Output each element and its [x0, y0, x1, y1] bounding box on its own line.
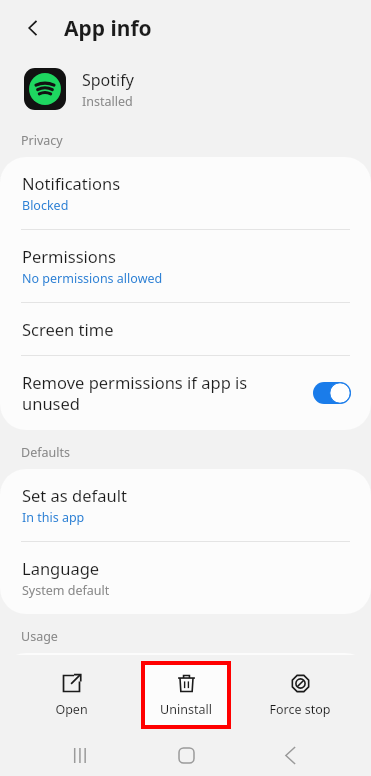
staticText: In this app: [22, 509, 85, 526]
button[interactable]: Open: [28, 663, 114, 727]
button[interactable]: Notifications: [0, 157, 371, 229]
button[interactable]: Home: [162, 735, 210, 776]
staticText: System default: [22, 582, 110, 599]
staticText: Force stop: [269, 701, 331, 718]
staticText: No permissions allowed: [22, 270, 163, 287]
staticText: Defaults: [21, 444, 70, 461]
staticText: Notifications: [22, 172, 121, 194]
button[interactable]: Uninstall: [143, 663, 229, 727]
button[interactable]: Set as default: [0, 469, 371, 541]
staticText: Remove permissions if app is unused: [22, 371, 303, 415]
staticText: Uninstall: [160, 701, 212, 718]
button[interactable]: Back: [18, 13, 48, 43]
staticText: Installed: [82, 93, 133, 110]
staticText: App info: [64, 14, 152, 43]
staticText: Permissions: [22, 245, 116, 267]
button[interactable]: Remove permissions if app is unused: [0, 356, 371, 430]
staticText: Usage: [21, 628, 58, 645]
button[interactable]: Force stop: [257, 663, 343, 727]
button[interactable]: Recent apps: [57, 735, 105, 776]
staticText: Set as default: [22, 484, 127, 506]
button[interactable]: Permissions: [0, 230, 371, 302]
staticText: Spotify: [82, 69, 134, 91]
staticText: Privacy: [21, 132, 63, 149]
staticText: Language: [22, 557, 100, 579]
button[interactable]: Language: [0, 542, 371, 614]
staticText: Screen time: [22, 318, 114, 340]
button[interactable]: Back: [266, 735, 314, 776]
button[interactable]: Screen time: [0, 303, 371, 355]
staticText: Open: [55, 701, 88, 718]
staticText: Blocked: [22, 197, 69, 214]
